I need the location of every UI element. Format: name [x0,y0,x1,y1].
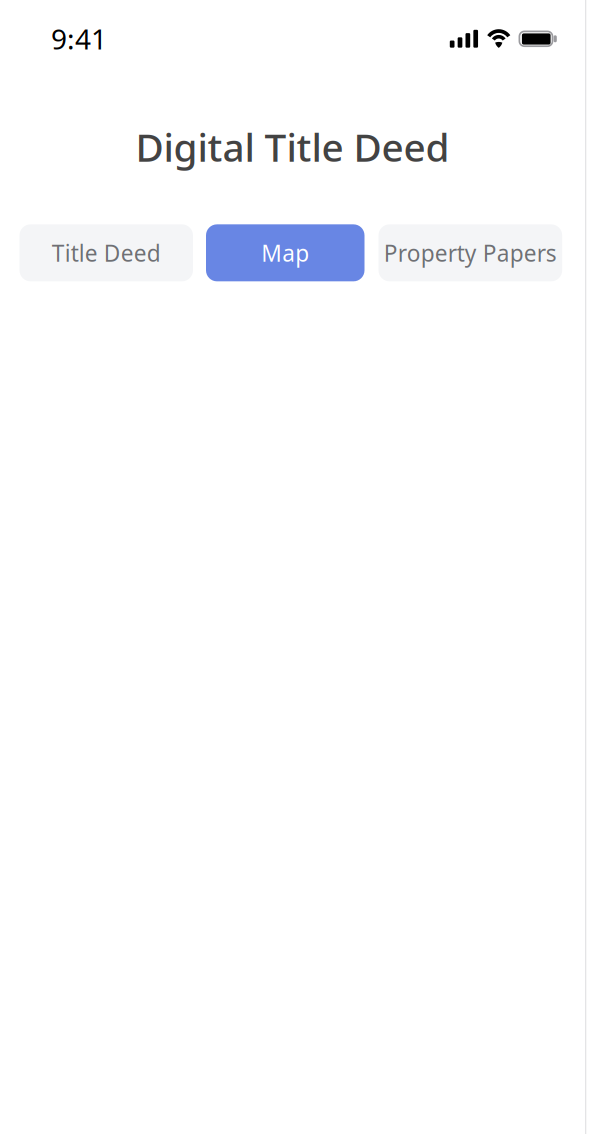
staticText: Property Papers [384,238,557,268]
staticText: 9:41 [51,20,107,57]
button[interactable]: Property Papers [378,224,562,281]
staticText: Title Deed [52,238,161,268]
staticText: Digital Title Deed [135,121,449,172]
button[interactable]: Title Deed [19,224,193,281]
staticText: Map [261,238,309,268]
button[interactable]: Map [206,224,364,281]
